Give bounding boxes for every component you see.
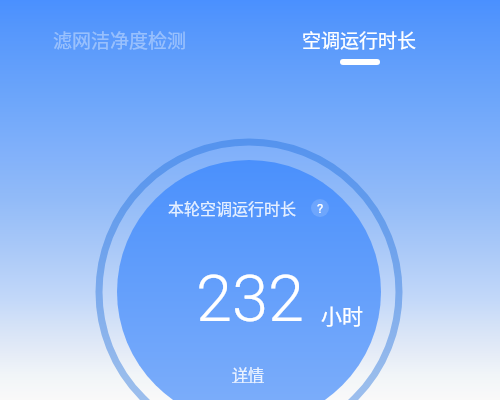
staticText: 详情 <box>232 362 265 385</box>
staticText: 空调运行时长 <box>302 26 417 54</box>
button[interactable]: 滤网洁净度检测 <box>53 26 187 54</box>
staticText: 小时 <box>321 300 363 330</box>
staticText: 本轮空调运行时长 <box>168 196 297 219</box>
button[interactable]: 空调运行时长 <box>302 26 417 65</box>
button[interactable]: 详情 <box>232 362 265 385</box>
staticText: ? <box>317 201 324 216</box>
staticText: 滤网洁净度检测 <box>53 26 187 54</box>
button[interactable]: 帮助 <box>311 199 329 217</box>
staticText: 232 <box>196 261 305 337</box>
